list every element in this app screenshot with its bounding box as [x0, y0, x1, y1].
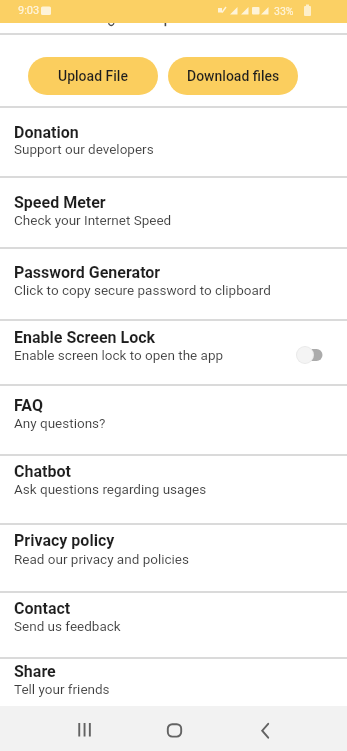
staticText: Any questions?	[14, 415, 106, 431]
staticText: FAQ	[14, 396, 43, 415]
staticText: 33%	[274, 5, 294, 17]
button[interactable]: Password Generator	[0, 249, 347, 319]
button[interactable]: FAQ	[0, 386, 347, 455]
button[interactable]	[70, 714, 99, 743]
button[interactable]	[296, 346, 323, 364]
staticText: Enable screen lock to open the app	[14, 347, 224, 363]
staticText: Click to copy secure password to clipboa…	[14, 282, 271, 298]
staticText: Download files	[187, 68, 280, 84]
staticText: Tell your friends	[14, 681, 110, 697]
button[interactable]: Donation	[0, 107, 347, 176]
staticText: 9:03	[18, 4, 40, 17]
button[interactable]: Speed Meter	[0, 177, 347, 247]
button[interactable]: Chatbot	[0, 456, 347, 524]
staticText: Password Generator	[14, 263, 161, 282]
staticText: Send us feedback	[14, 618, 121, 634]
button[interactable]	[160, 714, 189, 743]
staticText: Chatbot	[14, 462, 71, 481]
button[interactable]: Download files	[168, 57, 298, 95]
staticText: Read our privacy and policies	[14, 551, 189, 567]
button[interactable]: Privacy policy	[0, 525, 347, 592]
button[interactable]: Contact	[0, 593, 347, 658]
staticText: Share	[14, 662, 56, 681]
button[interactable]: Enable Screen Lock	[0, 320, 347, 384]
staticText: Support our developers	[14, 141, 154, 157]
staticText: Contact	[14, 599, 71, 618]
staticText: Ask questions regarding usages	[14, 481, 207, 497]
button[interactable]: Share	[0, 659, 347, 707]
staticText: Upload File	[58, 68, 128, 84]
staticText: Check your Internet Speed	[14, 212, 172, 228]
button[interactable]: Upload File	[28, 57, 158, 95]
staticText: Donation	[14, 123, 79, 142]
staticText: Speed Meter	[14, 193, 106, 212]
staticText: Enable Screen Lock	[14, 328, 156, 347]
staticText: Privacy policy	[14, 531, 115, 550]
button[interactable]	[250, 714, 279, 743]
